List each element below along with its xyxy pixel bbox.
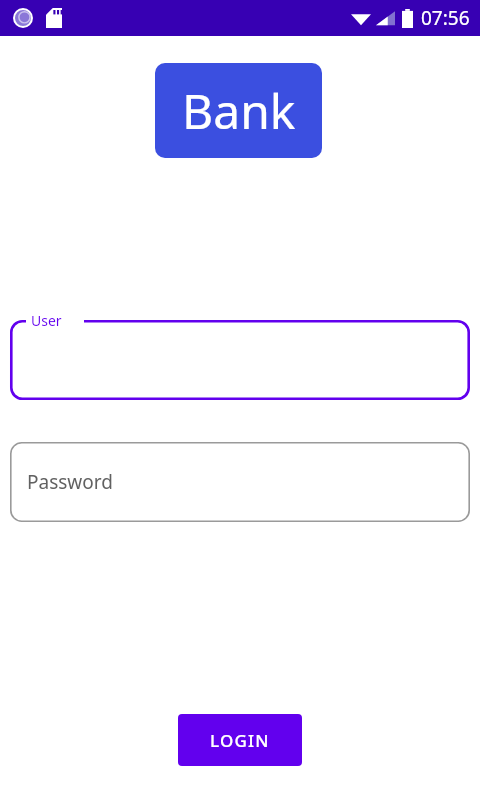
staticText: 07:56 <box>421 5 470 31</box>
staticText: LOGIN <box>210 729 270 752</box>
staticText: User <box>31 311 62 330</box>
staticText: Bank <box>182 78 296 143</box>
staticText: Password <box>27 469 113 495</box>
button[interactable]: User <box>10 320 470 400</box>
button[interactable]: Password <box>10 442 470 522</box>
button[interactable]: LOGIN <box>178 714 302 766</box>
